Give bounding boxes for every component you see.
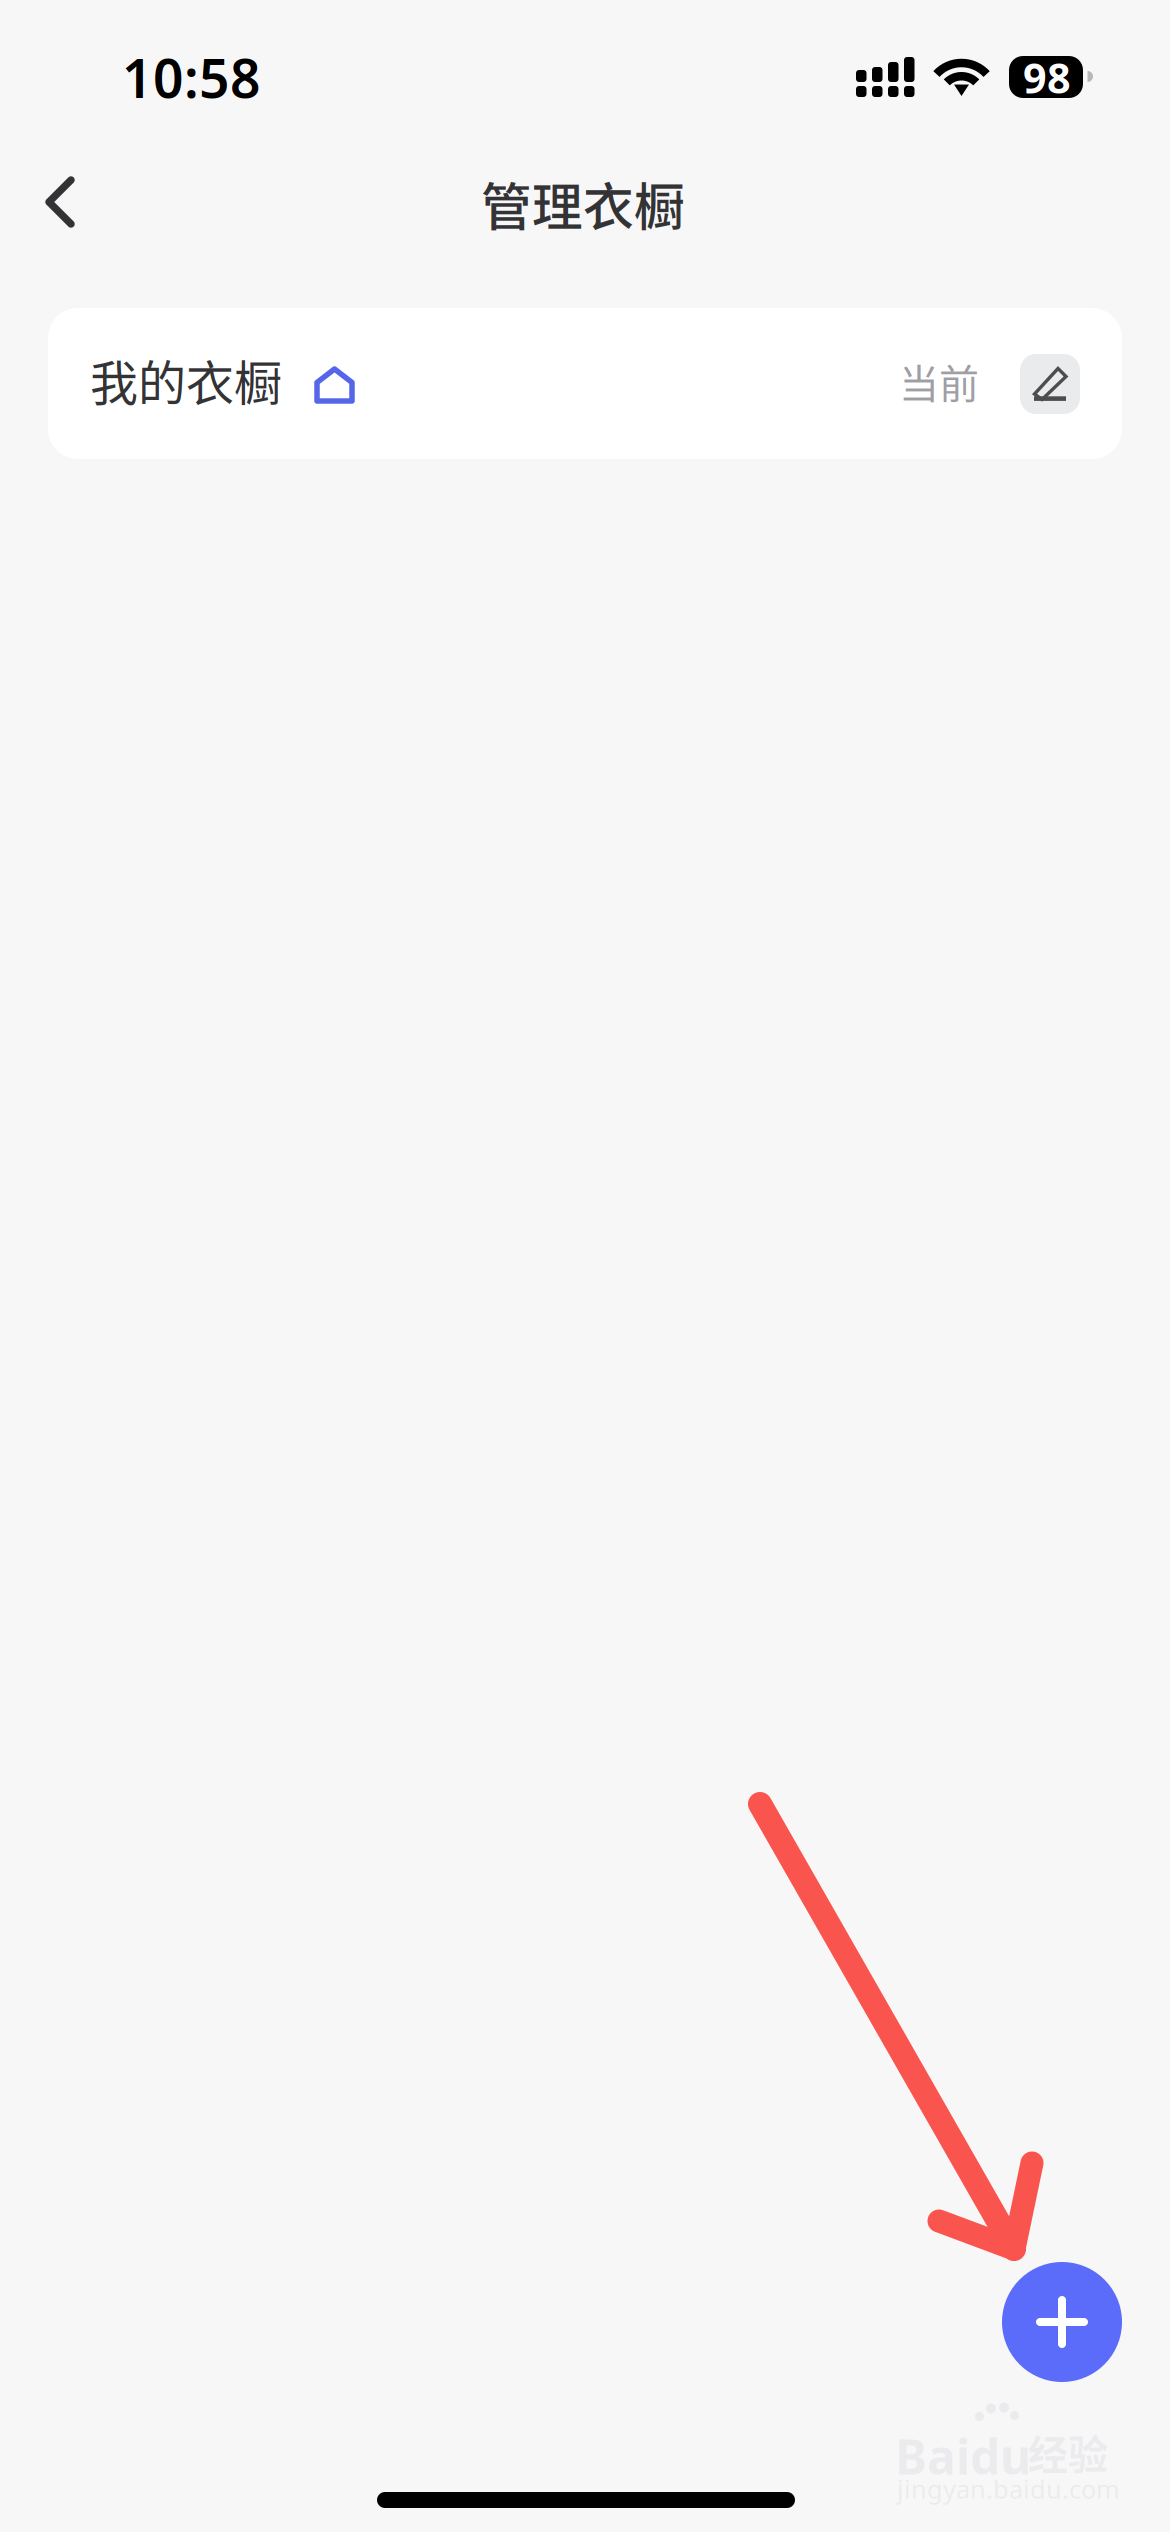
staticText: 经验 [1028, 2423, 1108, 2481]
button[interactable]: 我的衣橱 [48, 308, 1122, 459]
staticText: 我的衣橱 [90, 345, 282, 414]
staticText: 10:58 [122, 42, 261, 113]
staticText: 98 [1023, 50, 1071, 105]
button[interactable]: Back [0, 152, 100, 252]
staticText: jingyan.baidu.com [897, 2472, 1120, 2506]
button[interactable]: Rename wardrobe [1020, 354, 1080, 414]
button[interactable]: Add wardrobe [1002, 2262, 1122, 2382]
staticText: 管理衣橱 [481, 167, 685, 240]
staticText: Baidu [895, 2424, 1031, 2488]
staticText: 当前 [899, 352, 979, 410]
